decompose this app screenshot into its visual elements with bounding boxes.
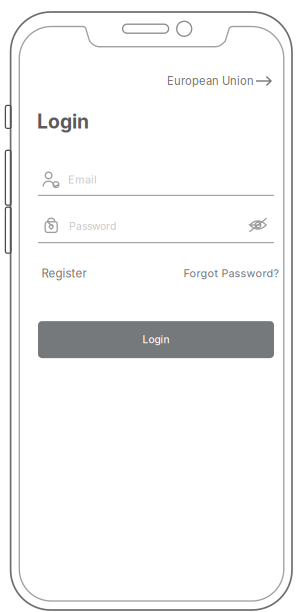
button[interactable]: Show password — [247, 216, 269, 234]
staticText: European Union — [167, 74, 254, 88]
button[interactable]: Login — [38, 321, 274, 358]
staticText: Forgot Password? — [183, 267, 279, 280]
button[interactable]: Register — [38, 263, 89, 283]
staticText: Login — [37, 110, 89, 133]
staticText: Login — [142, 333, 169, 346]
button[interactable]: European Union — [167, 74, 274, 88]
staticText: Password — [69, 220, 116, 232]
staticText: Email — [68, 173, 97, 186]
button[interactable]: Forgot Password? — [180, 264, 282, 283]
staticText: Register — [41, 266, 86, 280]
